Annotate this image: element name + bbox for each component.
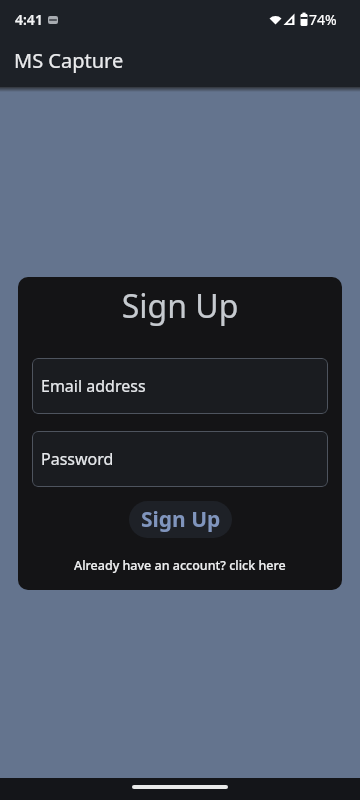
staticText: Sign Up [18, 284, 342, 328]
button[interactable]: Password [32, 431, 328, 487]
button[interactable]: Sign Up [129, 501, 232, 538]
staticText: 74% [309, 10, 337, 29]
staticText: Already have an account? click here [74, 557, 286, 574]
staticText: MS Capture [14, 47, 124, 74]
button[interactable]: Email address [32, 358, 328, 414]
staticText: Sign Up [141, 505, 221, 534]
staticText: Password [41, 448, 114, 470]
button[interactable]: Already have an account? click here [74, 557, 286, 574]
staticText: 4:41 [15, 10, 43, 29]
staticText: Email address [41, 375, 146, 397]
